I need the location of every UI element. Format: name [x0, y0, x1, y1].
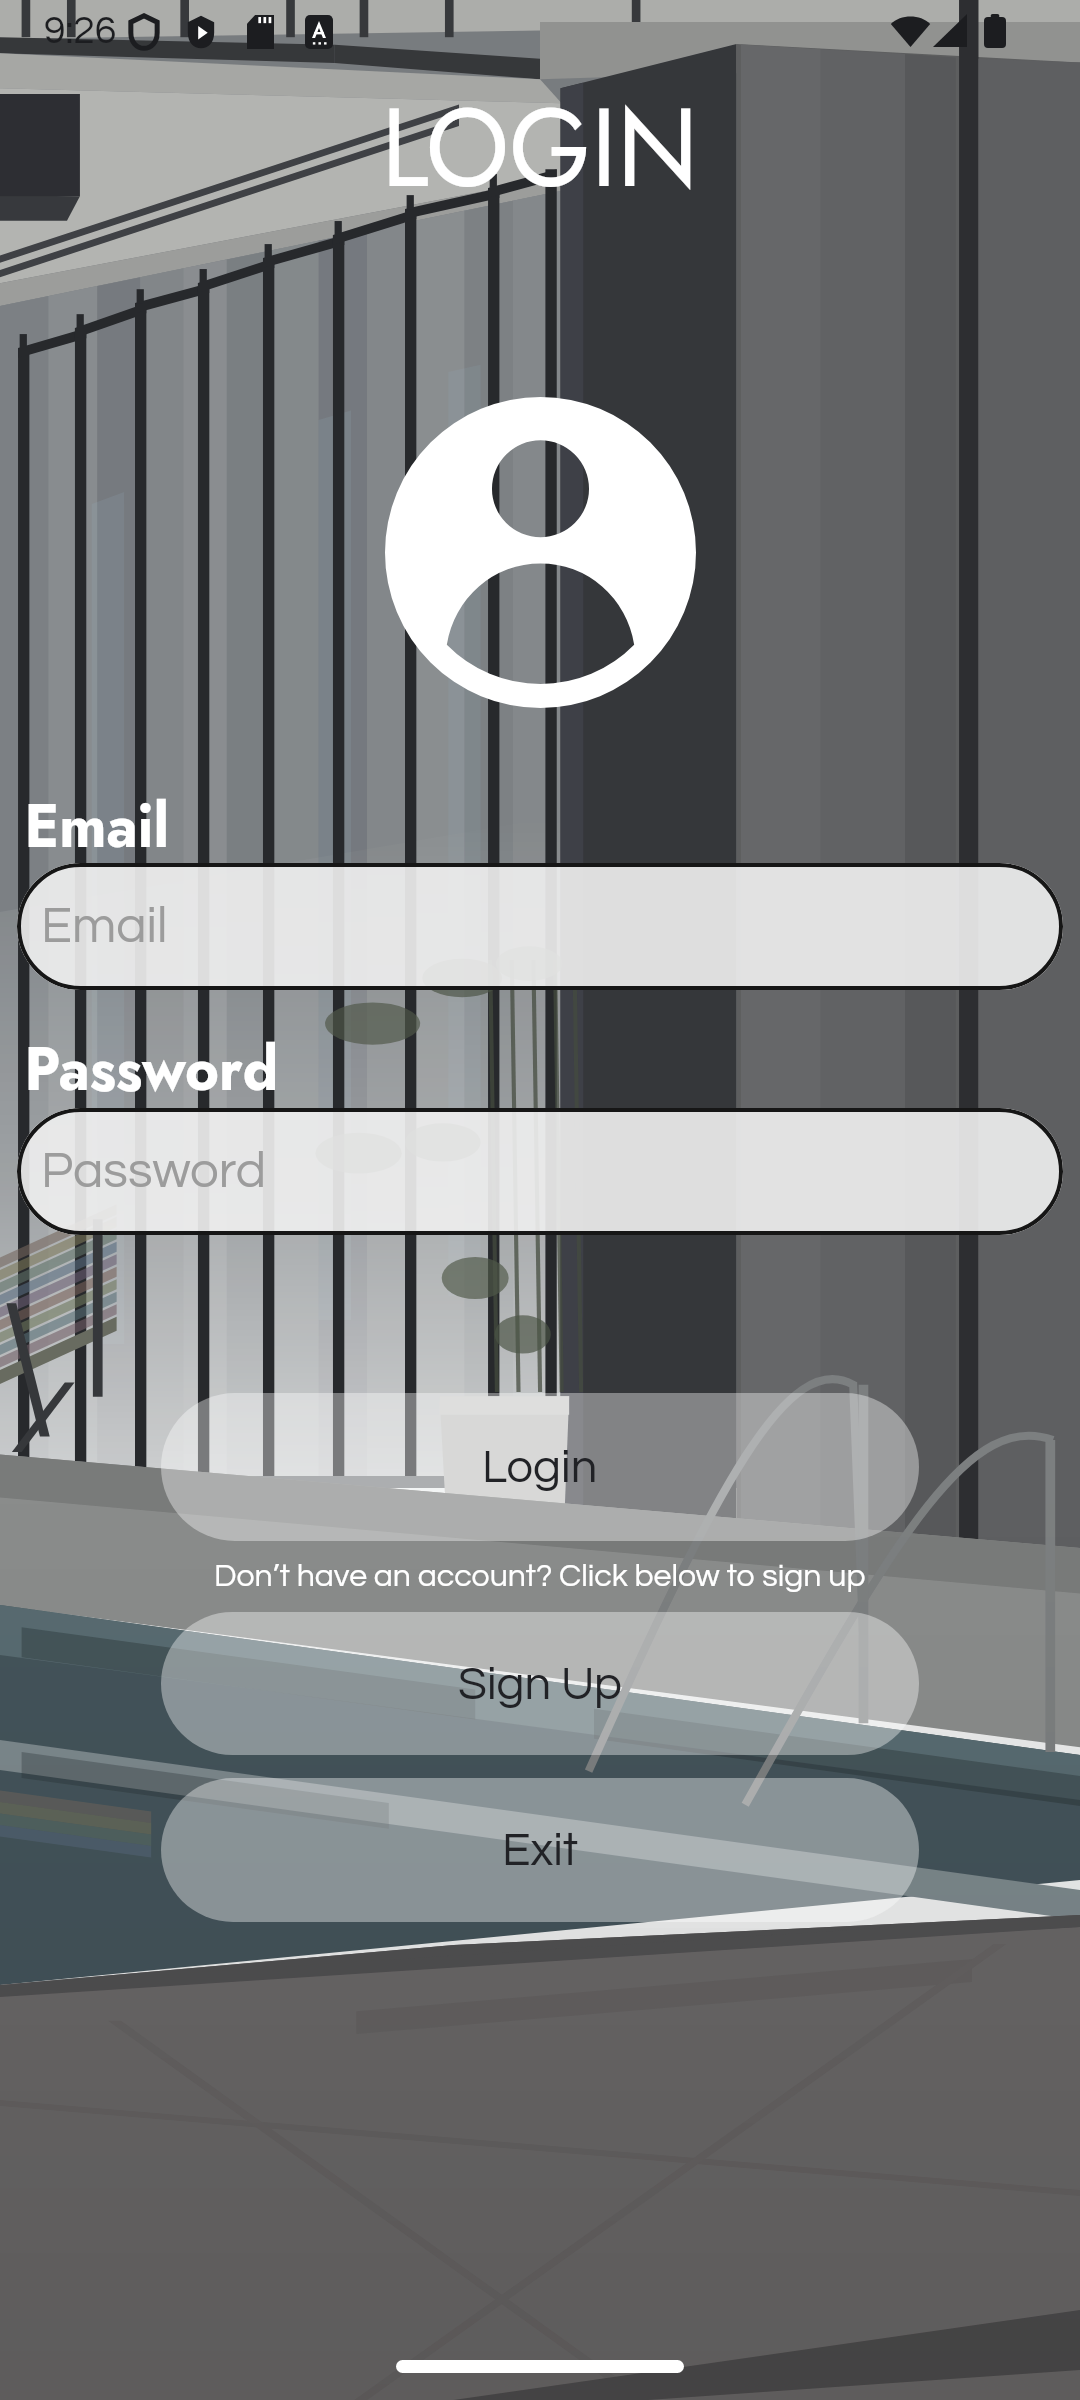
staticText: Login — [482, 1443, 598, 1491]
staticText: LOGIN — [22, 68, 1058, 227]
staticText: Email — [41, 900, 168, 953]
button[interactable]: Login — [161, 1393, 919, 1541]
button[interactable]: Profile picture — [385, 397, 696, 708]
button[interactable]: Password — [17, 1108, 1063, 1235]
staticText: 9:26 — [44, 11, 117, 51]
staticText: Email — [24, 781, 169, 871]
button[interactable]: Email — [17, 863, 1063, 990]
button[interactable]: Sign Up — [161, 1612, 919, 1755]
staticText: Password — [41, 1145, 267, 1198]
staticText: Password — [24, 1024, 278, 1114]
button[interactable]: Exit — [161, 1778, 919, 1922]
staticText: Don’t have an account? Click below to si… — [214, 1560, 866, 1593]
staticText: Sign Up — [458, 1660, 622, 1708]
staticText: Exit — [502, 1826, 579, 1874]
